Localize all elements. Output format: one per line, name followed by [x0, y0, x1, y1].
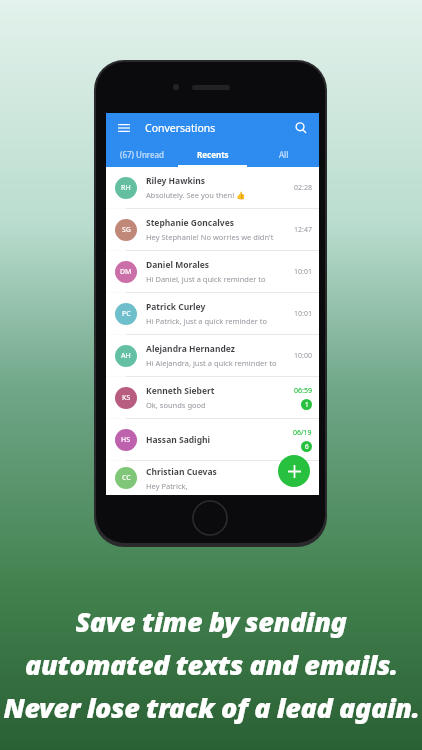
staticText: Hassan Sadighi — [146, 434, 211, 446]
button[interactable]: DM — [106, 251, 319, 292]
staticText: Never lose track of a lead again. — [3, 689, 420, 726]
staticText: Save time by sending — [75, 603, 347, 640]
button[interactable]: Search — [292, 119, 310, 137]
staticText: Hi Alejandra, just a quick reminder to c… — [146, 358, 277, 368]
staticText: RH — [121, 183, 131, 193]
staticText: Hey Stephanie! No worries we didn't real… — [146, 232, 277, 242]
staticText: DM — [120, 267, 132, 277]
staticText: Kenneth Siebert — [146, 385, 215, 397]
staticText: Riley Hawkins — [146, 175, 206, 187]
staticText: SG — [122, 225, 131, 235]
staticText: CC — [122, 473, 131, 483]
button[interactable]: AH — [106, 335, 319, 376]
staticText: 10:01 — [294, 267, 312, 277]
button[interactable]: KS — [106, 377, 319, 418]
button[interactable]: HS — [106, 419, 319, 460]
staticText: All — [279, 149, 289, 160]
staticText: Christian Cuevas — [146, 466, 217, 478]
button[interactable]: New conversation — [278, 455, 310, 487]
button[interactable]: Menu — [115, 119, 133, 137]
button[interactable]: (67) Unread — [106, 142, 177, 167]
staticText: Hey Patrick, — [146, 481, 188, 491]
staticText: 06/19 — [293, 428, 312, 438]
staticText: 12:47 — [294, 225, 312, 235]
staticText: Daniel Morales — [146, 259, 210, 271]
staticText: Hi Daniel, just a quick reminder to chec… — [146, 274, 277, 284]
button[interactable]: PC — [106, 293, 319, 334]
staticText: HS — [121, 435, 131, 445]
staticText: PC — [122, 309, 131, 319]
button[interactable]: SG — [106, 209, 319, 250]
staticText: Absolutely. See you then! 👍 — [146, 190, 246, 200]
staticText: 10:01 — [294, 309, 312, 319]
staticText: Alejandra Hernandez — [146, 343, 236, 355]
button[interactable]: Recents — [177, 142, 248, 167]
staticText: Patrick Curley — [146, 301, 206, 313]
button[interactable]: All — [248, 142, 319, 167]
staticText: 02:28 — [294, 183, 312, 193]
staticText: 06:59 — [294, 386, 312, 396]
button[interactable]: CC — [106, 461, 319, 495]
staticText: automated texts and emails. — [25, 646, 398, 683]
staticText: 1 — [305, 400, 309, 409]
staticText: Recents — [197, 149, 229, 160]
staticText: 6 — [305, 442, 309, 451]
staticText: Conversations — [145, 121, 216, 135]
staticText: Stephanie Goncalves — [146, 217, 234, 229]
staticText: AH — [121, 351, 131, 361]
staticText: Ok, sounds good — [146, 400, 206, 410]
staticText: Hi Patrick, just a quick reminder to che… — [146, 316, 277, 326]
staticText: KS — [122, 393, 131, 403]
staticText: 10:00 — [294, 351, 312, 361]
button[interactable]: RH — [106, 167, 319, 208]
staticText: (67) Unread — [120, 149, 164, 160]
